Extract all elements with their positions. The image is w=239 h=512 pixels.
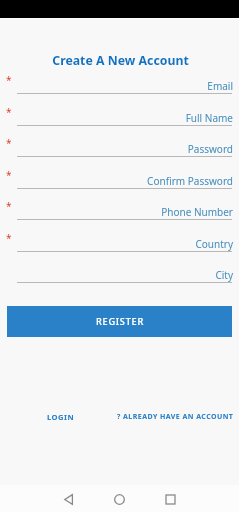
staticText: *	[6, 168, 12, 182]
button[interactable]: Back	[52, 486, 84, 512]
button[interactable]: ? ALREADY HAVE AN ACCOUNT	[117, 412, 234, 422]
button[interactable]: Home	[103, 486, 135, 512]
button[interactable]: LOGIN	[47, 412, 75, 422]
button[interactable]: City	[0, 265, 239, 285]
button[interactable]: *	[0, 139, 239, 159]
button[interactable]: REGISTER	[7, 306, 232, 337]
button[interactable]: *	[0, 234, 239, 254]
staticText: REGISTER	[96, 315, 144, 328]
staticText: *	[6, 105, 12, 119]
staticText: City	[0, 268, 233, 282]
staticText: *	[6, 136, 12, 150]
button[interactable]: Recent apps	[154, 486, 186, 512]
staticText: Phone Number	[0, 205, 233, 219]
staticText: Confirm Password	[0, 174, 233, 188]
button[interactable]: *	[0, 202, 239, 222]
staticText: ? ALREADY HAVE AN ACCOUNT	[117, 412, 234, 422]
staticText: *	[6, 231, 12, 245]
staticText: Country	[0, 237, 233, 251]
staticText: Full Name	[0, 111, 233, 125]
staticText: Password	[0, 142, 233, 156]
button[interactable]: *	[0, 171, 239, 191]
staticText: LOGIN	[47, 412, 75, 422]
staticText: Create A New Account	[1, 52, 239, 69]
staticText: Email	[0, 79, 233, 93]
button[interactable]: *	[0, 76, 239, 96]
button[interactable]: *	[0, 108, 239, 128]
staticText: *	[6, 199, 12, 213]
staticText: *	[6, 73, 12, 87]
